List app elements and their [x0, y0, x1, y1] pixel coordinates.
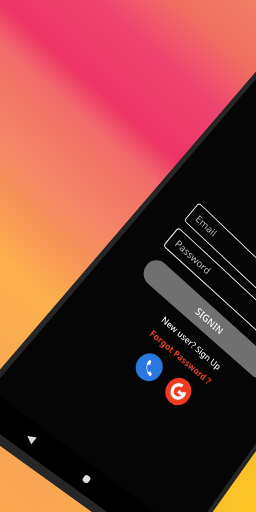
button[interactable]: SIGNIN [138, 255, 256, 383]
button[interactable]: Forgot Password ? [83, 272, 256, 434]
button[interactable]: Home [71, 464, 101, 494]
button[interactable]: Password [163, 227, 256, 354]
staticText: New user? Sign Up [159, 314, 223, 372]
staticText: Password [172, 237, 213, 277]
staticText: Forgot Password ? [147, 327, 213, 387]
staticText: SIGNIN [193, 304, 226, 337]
button[interactable]: Email [183, 202, 256, 329]
button[interactable]: Back [14, 422, 47, 453]
button[interactable]: Sign in with Google [160, 372, 197, 411]
button[interactable]: New user? Sign Up [95, 258, 256, 421]
button[interactable]: Sign in with phone [130, 348, 168, 387]
staticText: Email [193, 212, 220, 239]
